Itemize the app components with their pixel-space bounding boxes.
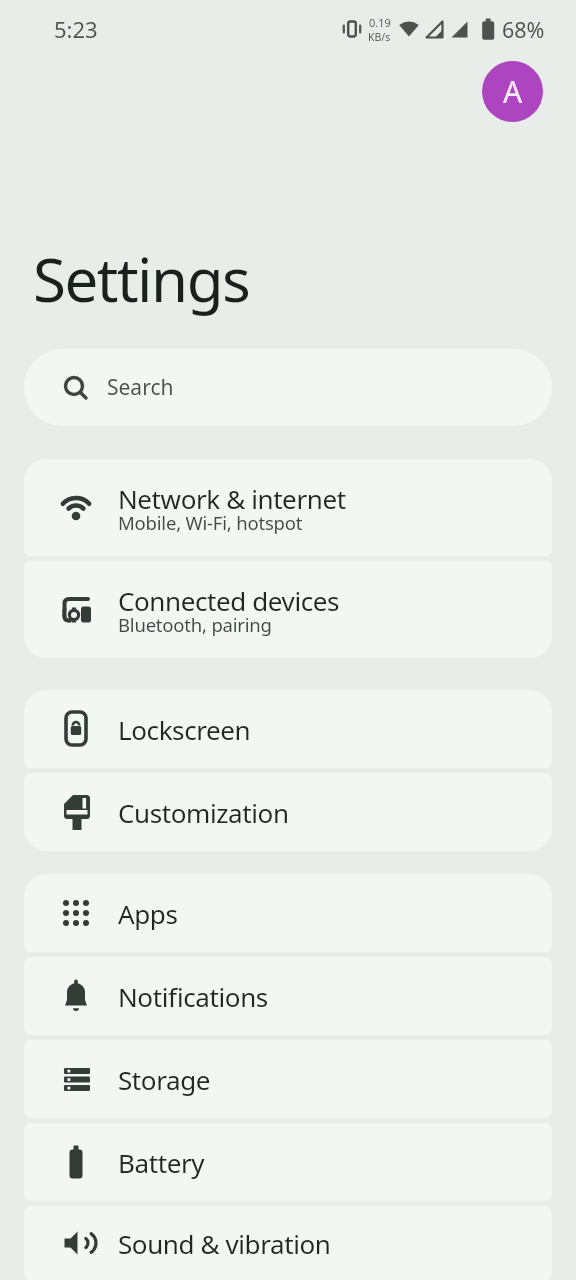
staticText: Connected devices — [118, 583, 340, 618]
button[interactable]: Apps — [24, 874, 552, 952]
button[interactable]: Connected devices — [24, 561, 552, 658]
staticText: Apps — [118, 896, 178, 931]
staticText: Sound & vibration — [118, 1226, 331, 1261]
button[interactable]: Network & internet — [24, 459, 552, 556]
button[interactable]: Battery — [24, 1123, 552, 1201]
button[interactable]: Customization — [24, 773, 552, 851]
staticText: Battery — [118, 1145, 205, 1180]
button[interactable]: Storage — [24, 1040, 552, 1118]
staticText: Notifications — [118, 979, 268, 1014]
staticText: Search — [107, 373, 174, 402]
button[interactable]: Notifications — [24, 957, 552, 1035]
staticText: Customization — [118, 795, 289, 830]
staticText: Mobile, Wi-Fi, hotspot — [118, 510, 303, 535]
button[interactable]: Sound & vibration — [24, 1206, 552, 1280]
button[interactable]: A — [482, 61, 543, 122]
staticText: 5:23 — [54, 14, 98, 44]
button[interactable]: Search — [24, 349, 552, 426]
button[interactable]: Lockscreen — [24, 690, 552, 768]
staticText: Settings — [33, 238, 250, 320]
staticText: A — [503, 71, 523, 112]
staticText: Lockscreen — [118, 712, 251, 747]
staticText: Storage — [118, 1062, 211, 1097]
staticText: 68% — [502, 15, 545, 44]
staticText: Bluetooth, pairing — [118, 612, 272, 637]
staticText: Network & internet — [118, 481, 346, 516]
staticText: KB/s — [368, 30, 391, 44]
staticText: 0.19 — [369, 15, 391, 30]
